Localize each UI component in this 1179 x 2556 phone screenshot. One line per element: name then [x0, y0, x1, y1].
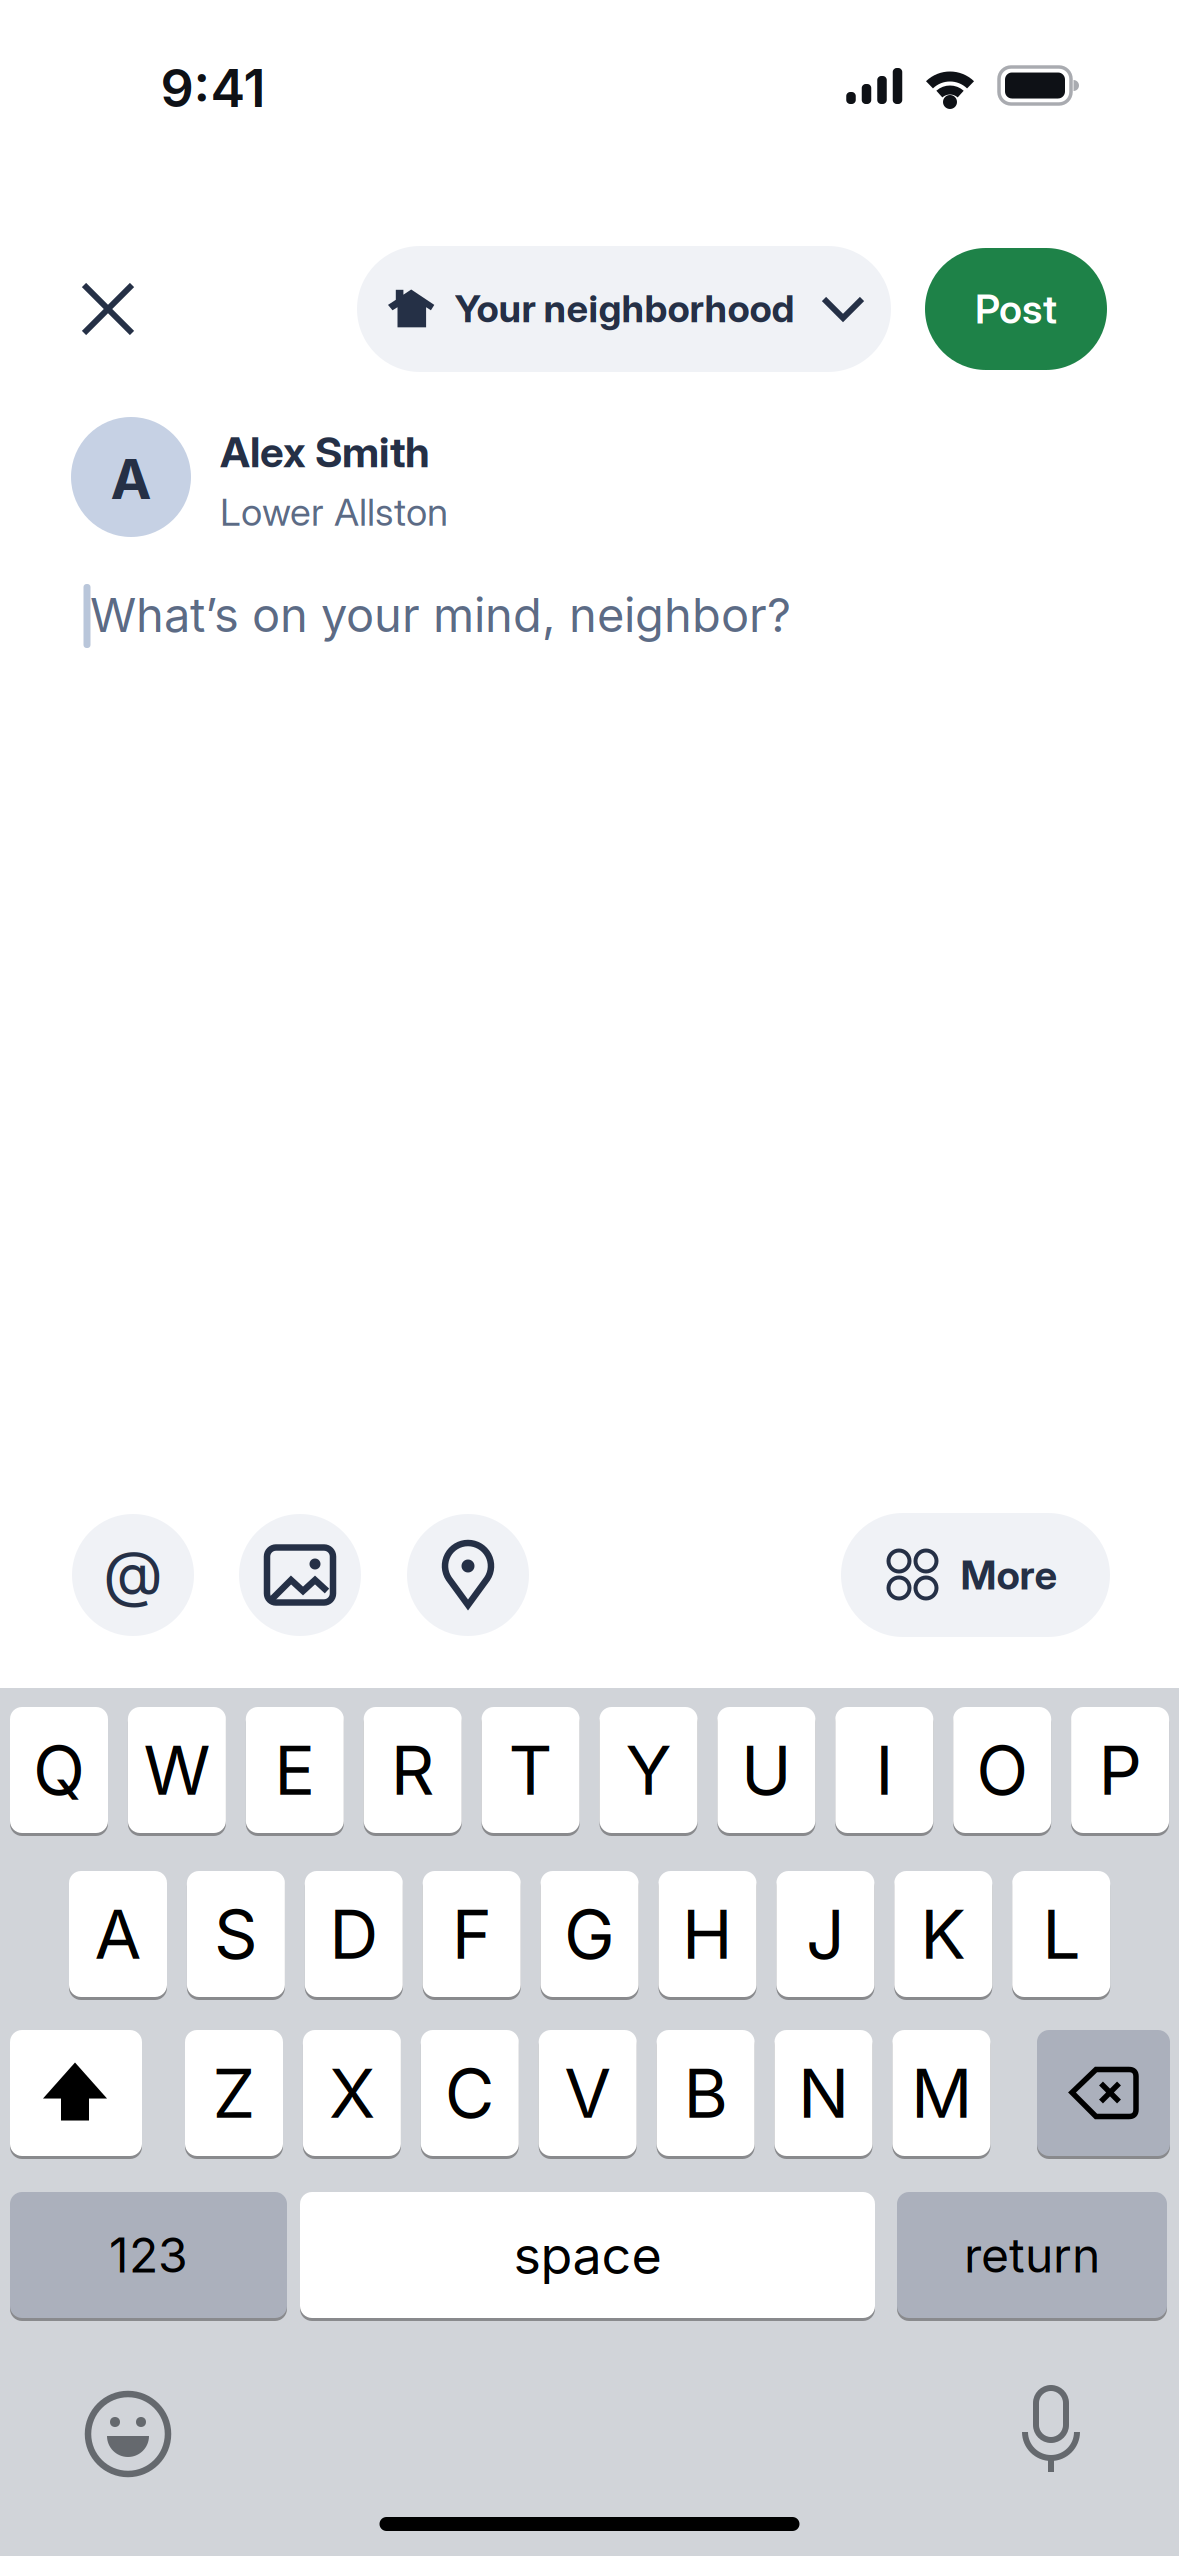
- button[interactable]: Add photo: [239, 1514, 361, 1636]
- staticText: K: [920, 1893, 966, 1975]
- staticText: D: [329, 1893, 378, 1975]
- button[interactable]: L: [1012, 1869, 1110, 1998]
- staticText: 9:41: [160, 56, 265, 119]
- button[interactable]: Add location: [407, 1514, 529, 1636]
- button[interactable]: A: [69, 1869, 167, 1998]
- button[interactable]: Delete: [1037, 2028, 1170, 2157]
- staticText: P: [1099, 1729, 1142, 1811]
- staticText: Lower Allston: [220, 489, 448, 535]
- button[interactable]: return: [897, 2190, 1167, 2319]
- staticText: A: [110, 446, 151, 512]
- button[interactable]: R: [364, 1705, 462, 1834]
- button[interactable]: X: [303, 2028, 401, 2157]
- staticText: X: [329, 2052, 375, 2134]
- staticText: L: [1042, 1893, 1080, 1975]
- button[interactable]: Your neighborhood: [357, 246, 891, 372]
- staticText: T: [509, 1729, 553, 1811]
- staticText: H: [682, 1893, 733, 1975]
- staticText: E: [274, 1729, 315, 1811]
- button[interactable]: Post: [925, 248, 1107, 370]
- button[interactable]: K: [894, 1869, 992, 1998]
- button[interactable]: H: [658, 1869, 756, 1998]
- staticText: R: [391, 1729, 435, 1811]
- button[interactable]: Q: [10, 1705, 108, 1834]
- staticText: U: [741, 1729, 792, 1811]
- button[interactable]: J: [776, 1869, 874, 1998]
- button[interactable]: W: [128, 1705, 226, 1834]
- button[interactable]: 123: [10, 2190, 287, 2319]
- staticText: Z: [212, 2052, 255, 2134]
- button[interactable]: U: [717, 1705, 815, 1834]
- staticText: I: [875, 1729, 893, 1811]
- button[interactable]: B: [657, 2028, 755, 2157]
- staticText: Y: [625, 1729, 671, 1811]
- staticText: 123: [109, 2226, 188, 2284]
- button[interactable]: S: [187, 1869, 285, 1998]
- staticText: space: [513, 2223, 661, 2286]
- button[interactable]: F: [423, 1869, 521, 1998]
- staticText: G: [564, 1893, 615, 1975]
- staticText: Q: [33, 1729, 85, 1811]
- staticText: W: [143, 1729, 210, 1811]
- button[interactable]: Dictate: [991, 2374, 1111, 2494]
- staticText: More: [960, 1551, 1057, 1599]
- button[interactable]: Mention a neighbor: [72, 1514, 194, 1636]
- button[interactable]: E: [246, 1705, 344, 1834]
- button[interactable]: T: [482, 1705, 580, 1834]
- button[interactable]: M: [892, 2028, 990, 2157]
- staticText: M: [911, 2052, 972, 2134]
- staticText: C: [445, 2052, 495, 2134]
- button[interactable]: Z: [185, 2028, 283, 2157]
- button[interactable]: D: [305, 1869, 403, 1998]
- staticText: Post: [975, 285, 1057, 333]
- staticText: Your neighborhood: [454, 285, 794, 331]
- button[interactable]: V: [539, 2028, 637, 2157]
- button[interactable]: Emoji: [68, 2374, 188, 2494]
- staticText: A: [94, 1893, 141, 1975]
- button[interactable]: P: [1071, 1705, 1169, 1834]
- button[interactable]: C: [421, 2028, 519, 2157]
- button[interactable]: Shift: [10, 2028, 142, 2157]
- staticText: Alex Smith: [220, 427, 430, 477]
- button[interactable]: Close: [59, 260, 157, 358]
- button[interactable]: More: [841, 1513, 1110, 1637]
- staticText: N: [798, 2052, 849, 2134]
- staticText: F: [452, 1893, 492, 1975]
- staticText: @: [103, 1535, 163, 1610]
- button[interactable]: space: [300, 2190, 875, 2319]
- button[interactable]: N: [774, 2028, 872, 2157]
- staticText: J: [806, 1893, 845, 1975]
- button[interactable]: O: [953, 1705, 1051, 1834]
- staticText: O: [976, 1729, 1028, 1811]
- staticText: return: [964, 2226, 1100, 2284]
- staticText: What’s on your mind, neighbor?: [90, 587, 791, 643]
- staticText: V: [564, 2052, 611, 2134]
- button[interactable]: I: [835, 1705, 933, 1834]
- staticText: B: [684, 2052, 728, 2134]
- button[interactable]: Y: [599, 1705, 697, 1834]
- button[interactable]: G: [541, 1869, 639, 1998]
- staticText: S: [214, 1893, 258, 1975]
